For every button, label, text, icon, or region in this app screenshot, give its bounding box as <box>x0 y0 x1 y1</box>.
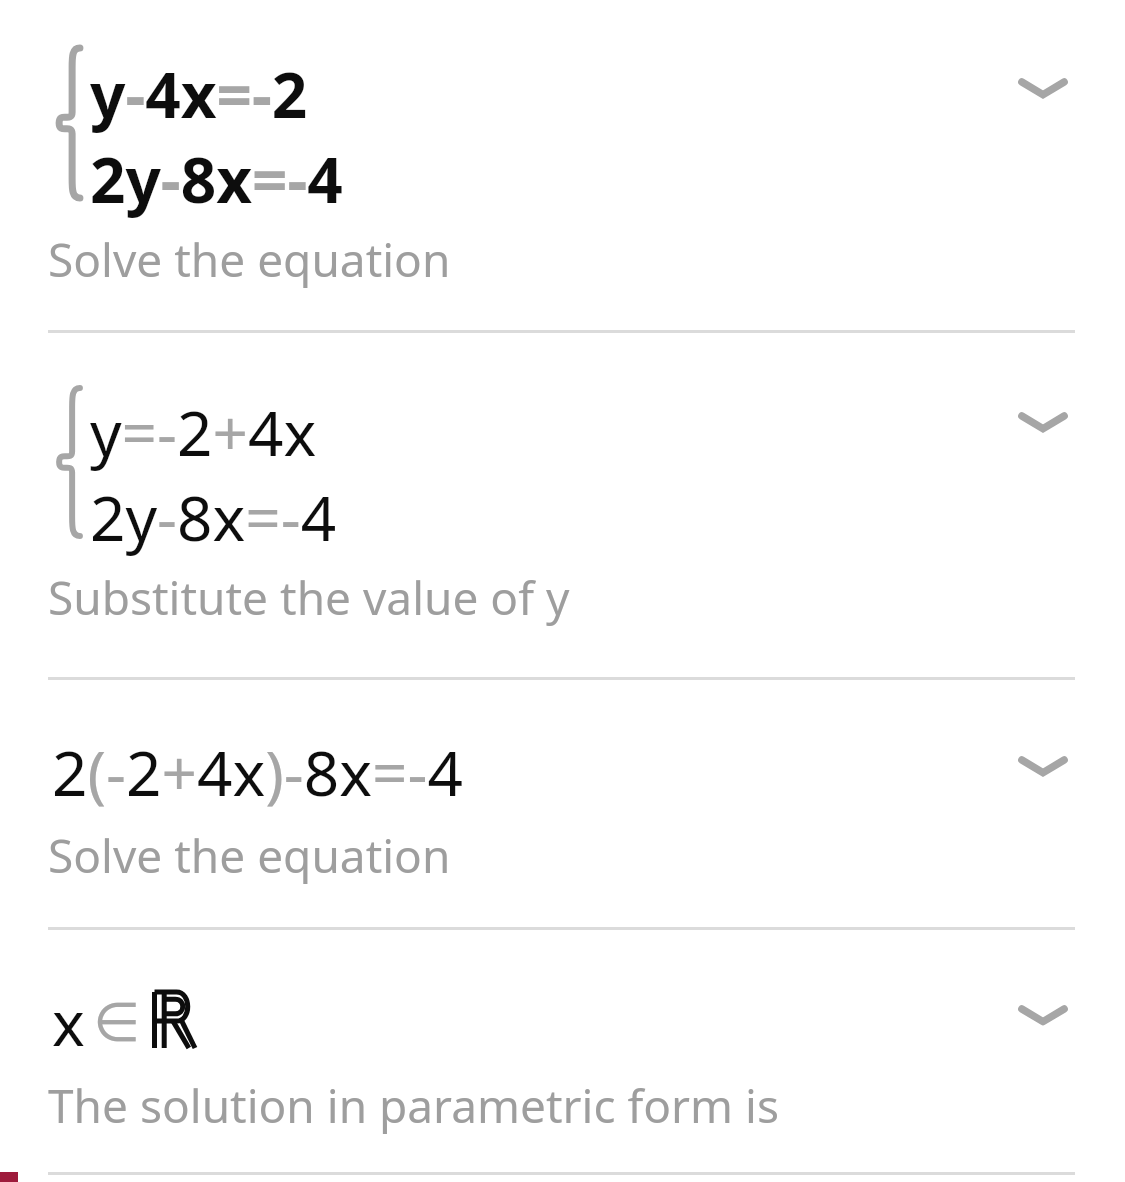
button[interactable] <box>0 930 1125 1172</box>
staticText: 2y-8x=-4 <box>90 137 343 221</box>
staticText: ∈ <box>93 991 141 1054</box>
button[interactable] <box>0 0 1125 330</box>
staticText: 2y-8x=-4 <box>90 475 337 559</box>
staticText: Substitute the value of y <box>48 566 570 629</box>
staticText: Solve the equation <box>48 228 451 291</box>
staticText: 2(-2+4x)-8x=-4 <box>52 730 463 814</box>
staticText: x <box>52 980 85 1064</box>
staticText: y-4x=-2 <box>90 52 308 136</box>
button[interactable]: Expand step 1 <box>997 48 1089 128</box>
button[interactable]: Expand step 3 <box>997 726 1089 806</box>
button[interactable] <box>0 333 1125 677</box>
staticText: Solve the equation <box>48 824 451 887</box>
button[interactable] <box>0 680 1125 927</box>
button[interactable]: Expand step 2 <box>997 382 1089 462</box>
button[interactable]: Expand step 4 <box>997 975 1089 1055</box>
staticText: The solution in parametric form is <box>48 1074 779 1137</box>
staticText: y=-2+4x <box>90 390 317 474</box>
